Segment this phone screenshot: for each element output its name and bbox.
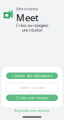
staticText: Créez ou rejoignez — [15, 23, 48, 28]
staticText: Créer une réunion — [16, 95, 48, 100]
button[interactable]: + — [6, 72, 58, 79]
staticText: une réunion — [22, 27, 42, 32]
staticText: Entrer un code — [19, 85, 44, 90]
button[interactable]: Entrer un code — [6, 83, 58, 92]
staticText: Inviter des utilisateurs — [14, 73, 52, 78]
button[interactable]: Créer une réunion — [6, 94, 58, 101]
button[interactable]: Rejoindre une réunion — [14, 108, 49, 114]
staticText: Meet — [16, 11, 39, 24]
staticText: + — [11, 73, 13, 78]
staticText: Informations — [16, 6, 38, 11]
staticText: Rejoindre une réunion — [14, 109, 49, 113]
